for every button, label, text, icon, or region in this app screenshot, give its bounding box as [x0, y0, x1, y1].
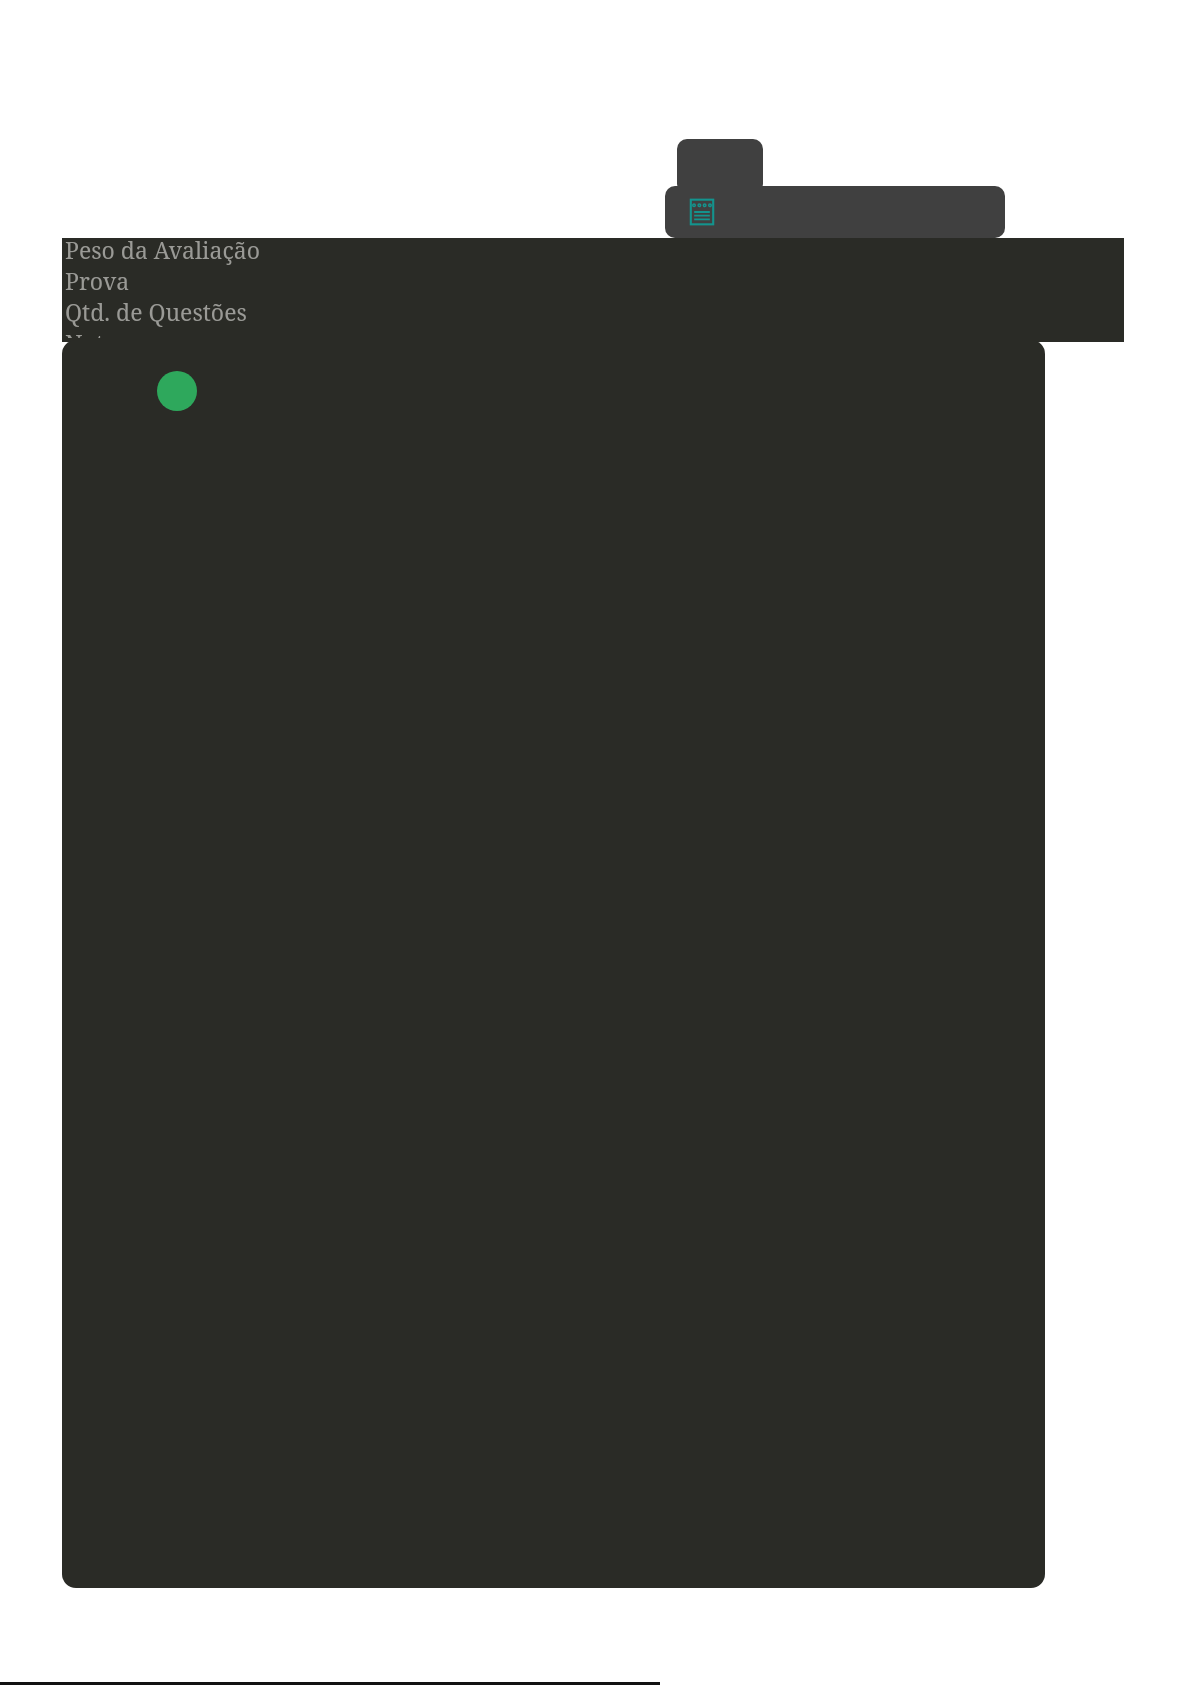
- button[interactable]: Status: [157, 371, 197, 411]
- button[interactable]: Menu popup: [677, 139, 763, 194]
- button[interactable]: Notes: [665, 186, 1005, 238]
- staticText: Qtd. de Questões: [65, 296, 247, 327]
- staticText: Nota: [65, 327, 117, 338]
- staticText: Peso da Avaliação: [65, 234, 260, 265]
- button[interactable]: Notes: [688, 198, 716, 226]
- staticText: Prova: [65, 265, 130, 296]
